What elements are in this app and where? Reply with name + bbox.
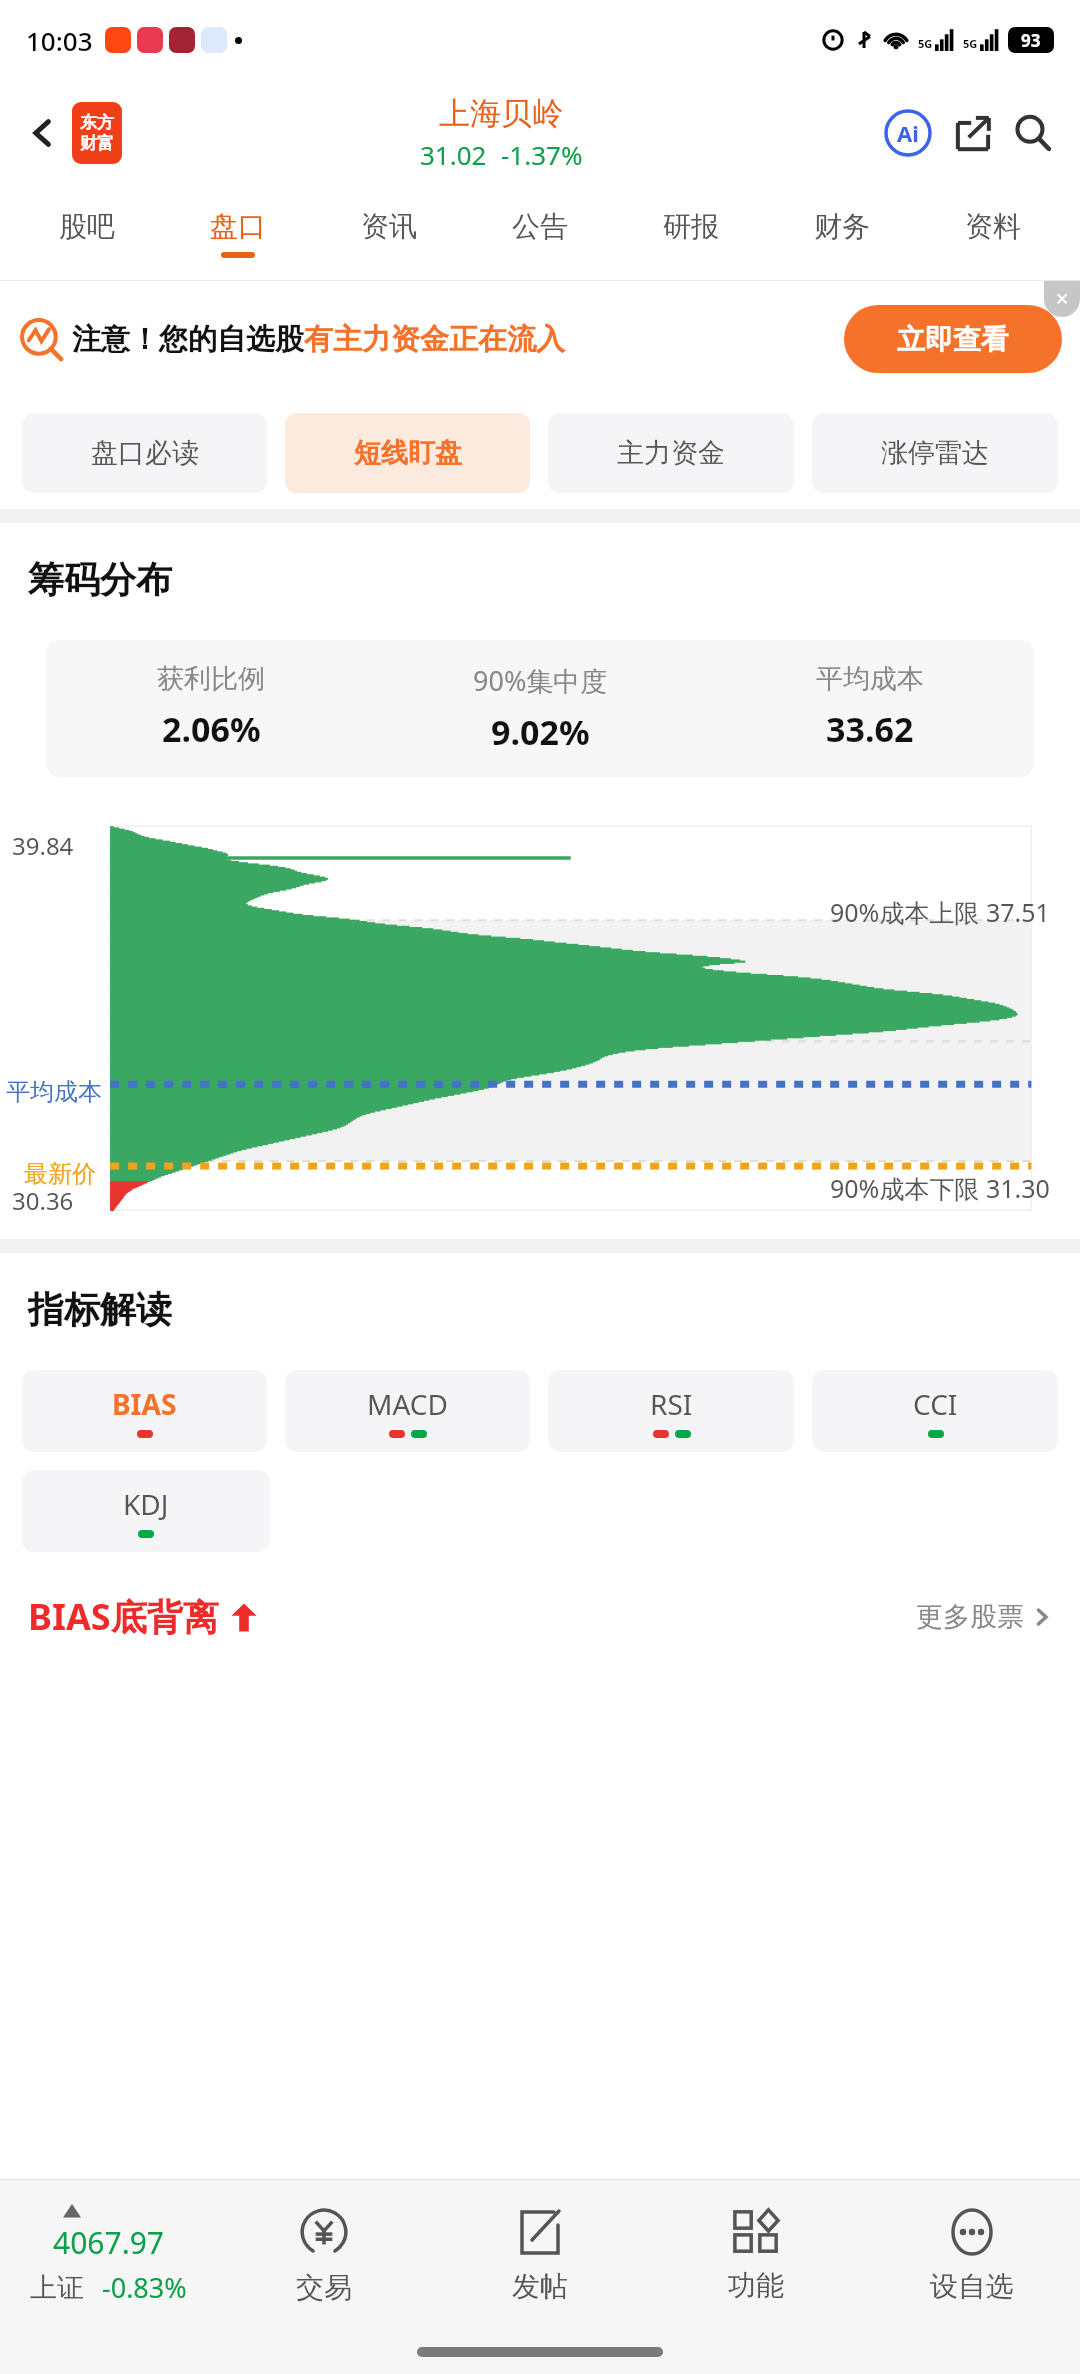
- button[interactable]: KDJ: [22, 1470, 270, 1552]
- staticText: 发帖: [512, 2269, 568, 2304]
- staticText: -1.37%: [501, 137, 583, 172]
- staticText: 涨停雷达: [881, 436, 989, 470]
- staticText: 立即查看: [897, 322, 1009, 357]
- button[interactable]: Back: [20, 110, 66, 156]
- staticText: 93: [1021, 29, 1041, 52]
- button[interactable]: 立即查看: [844, 305, 1062, 373]
- staticText: 90%成本上限 37.51: [830, 895, 1050, 929]
- staticText: 交易: [296, 2270, 352, 2305]
- staticText: 资料: [965, 209, 1021, 244]
- button[interactable]: 设自选: [864, 2180, 1080, 2330]
- staticText: 5G: [963, 36, 978, 51]
- staticText: 更多股票: [916, 1600, 1024, 1634]
- button[interactable]: 更多股票: [916, 1600, 1052, 1634]
- button[interactable]: 功能: [648, 2180, 864, 2330]
- staticText: 9.02%: [491, 709, 590, 755]
- staticText: 上证: [30, 2271, 84, 2305]
- staticText: 最新价: [24, 1159, 96, 1189]
- staticText: 上海贝岭: [439, 94, 563, 133]
- staticText: 90%集中度: [473, 662, 608, 699]
- staticText: 设自选: [930, 2269, 1014, 2304]
- staticText: 39.84: [12, 829, 74, 862]
- button[interactable]: 发帖: [432, 2180, 648, 2330]
- staticText: 30.36: [12, 1184, 74, 1217]
- staticText: 有主力资金正在流入: [304, 321, 565, 358]
- button[interactable]: MACD: [285, 1370, 530, 1452]
- staticText: 东方: [80, 112, 114, 133]
- staticText: 公告: [512, 209, 568, 244]
- staticText: 资讯: [361, 209, 417, 244]
- staticText: 主力资金: [617, 436, 725, 470]
- staticText: 筹码分布: [28, 557, 172, 602]
- staticText: 研报: [663, 209, 719, 244]
- button[interactable]: Share: [946, 106, 1000, 160]
- staticText: 功能: [728, 2268, 784, 2303]
- button[interactable]: 盘口必读: [22, 413, 267, 493]
- staticText: 财务: [814, 209, 870, 244]
- staticText: -0.83%: [102, 2269, 187, 2306]
- button[interactable]: BIAS: [22, 1370, 267, 1452]
- button[interactable]: 4067.97: [0, 2204, 216, 2306]
- button[interactable]: 研报: [615, 186, 766, 280]
- staticText: MACD: [367, 1385, 448, 1423]
- button[interactable]: Close ad: [1044, 281, 1080, 317]
- button[interactable]: 资料: [917, 186, 1068, 280]
- staticText: 平均成本: [816, 662, 924, 696]
- button[interactable]: 短线盯盘: [285, 413, 530, 493]
- staticText: 指标解读: [28, 1287, 172, 1332]
- staticText: KDJ: [123, 1485, 169, 1523]
- button[interactable]: 主力资金: [548, 413, 794, 493]
- staticText: 平均成本: [6, 1077, 102, 1107]
- staticText: 2.06%: [162, 706, 261, 752]
- button[interactable]: 涨停雷达: [812, 413, 1058, 493]
- staticText: BIAS: [112, 1385, 177, 1423]
- button[interactable]: 股吧: [12, 186, 162, 280]
- staticText: 注意！您的自选股: [72, 321, 304, 358]
- staticText: ✕: [1055, 289, 1070, 309]
- staticText: BIAS底背离: [28, 1592, 219, 1641]
- button[interactable]: 公告: [464, 186, 615, 280]
- button[interactable]: 盘口: [162, 186, 313, 280]
- staticText: 短线盯盘: [354, 436, 462, 470]
- staticText: 10:03: [26, 23, 93, 58]
- button[interactable]: Search: [1006, 106, 1060, 160]
- button[interactable]: 东方: [72, 102, 122, 164]
- button[interactable]: CCI: [812, 1370, 1058, 1452]
- staticText: RSI: [650, 1385, 693, 1423]
- button[interactable]: RSI: [548, 1370, 794, 1452]
- staticText: 财富: [80, 133, 114, 154]
- staticText: 31.02: [420, 137, 487, 172]
- staticText: 4067.97: [53, 2222, 164, 2263]
- staticText: 盘口必读: [91, 436, 199, 470]
- button[interactable]: 交易: [216, 2180, 432, 2330]
- staticText: CCI: [913, 1385, 958, 1423]
- staticText: 90%成本下限 31.30: [830, 1171, 1050, 1205]
- button[interactable]: AI assistant: [880, 105, 936, 161]
- button[interactable]: 财务: [766, 186, 917, 280]
- staticText: 盘口: [210, 209, 266, 244]
- staticText: 获利比例: [157, 662, 265, 696]
- staticText: 股吧: [59, 209, 115, 244]
- staticText: Ai: [897, 118, 919, 148]
- button[interactable]: 资讯: [313, 186, 464, 280]
- staticText: 5G: [918, 36, 933, 51]
- staticText: 33.62: [826, 706, 914, 752]
